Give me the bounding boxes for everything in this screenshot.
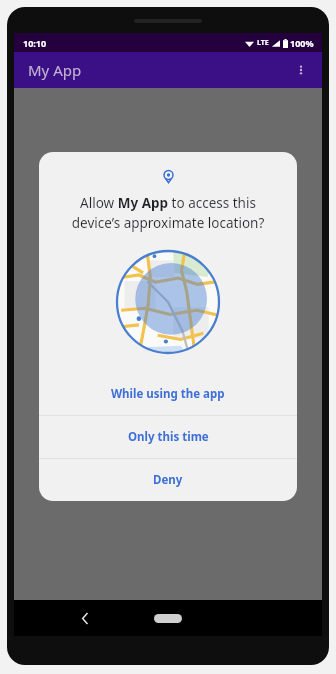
button[interactable]: Only this time: [39, 416, 297, 458]
button[interactable]: Home: [151, 609, 185, 627]
button[interactable]: Back: [70, 603, 100, 633]
button[interactable]: Deny: [39, 459, 297, 501]
staticText: 10:10: [23, 37, 47, 49]
staticText: While using the app: [111, 386, 225, 402]
staticText: Allow My App to access this device’s app…: [55, 194, 281, 232]
staticText: LTE: [257, 38, 269, 48]
staticText: Deny: [153, 472, 183, 488]
staticText: Only this time: [128, 429, 209, 445]
staticText: 100%: [290, 37, 314, 49]
button[interactable]: More options: [286, 55, 316, 85]
button[interactable]: While using the app: [39, 373, 297, 415]
staticText: My App: [28, 60, 82, 80]
